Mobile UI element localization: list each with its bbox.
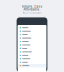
button[interactable]	[18, 36, 46, 40]
staticText: All your money in one place	[22, 12, 41, 14]
button[interactable]	[18, 26, 46, 29]
button[interactable]	[18, 33, 46, 36]
button[interactable]	[18, 60, 46, 64]
button[interactable]	[18, 54, 46, 57]
button[interactable]	[18, 47, 46, 50]
button[interactable]	[18, 40, 46, 43]
button[interactable]	[18, 43, 46, 47]
button[interactable]	[18, 29, 46, 33]
staticText: Simple. Easy.	[21, 5, 42, 8]
button[interactable]	[18, 57, 46, 60]
button[interactable]	[18, 50, 46, 54]
staticText: Affordable.	[23, 8, 40, 11]
button[interactable]	[18, 64, 46, 67]
